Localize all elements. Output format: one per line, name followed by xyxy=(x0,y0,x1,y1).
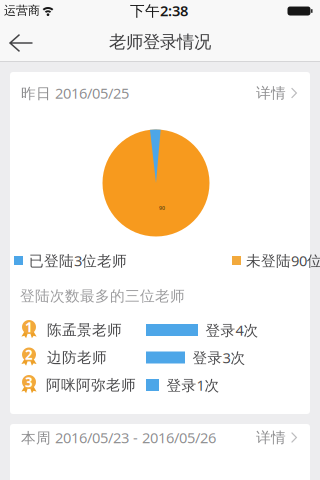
staticText: 90 xyxy=(159,204,165,212)
staticText: 登录4次 xyxy=(205,320,258,340)
staticText: 3 xyxy=(25,373,33,391)
staticText: 本周 2016/05/23 - 2016/05/26 xyxy=(21,428,216,447)
staticText: 详情 xyxy=(256,84,286,102)
staticText: 昨日 2016/05/25 xyxy=(21,83,129,103)
button[interactable]: 详情 xyxy=(237,426,297,448)
staticText: 未登陆90位老师 xyxy=(246,251,320,270)
staticText: 已登陆3位老师 xyxy=(29,251,127,270)
staticText: 下午2:38 xyxy=(130,1,188,20)
staticText: 老师登录情况 xyxy=(109,31,211,53)
staticText: 详情 xyxy=(256,428,286,446)
button[interactable]: 详情 xyxy=(237,82,297,104)
staticText: 登陆次数最多的三位老师 xyxy=(20,287,185,305)
staticText: 登录3次 xyxy=(192,348,245,367)
staticText: 1 xyxy=(25,318,33,336)
staticText: 2 xyxy=(25,346,33,363)
staticText: 运营商 xyxy=(4,3,40,18)
staticText: 阿咪阿弥老师 xyxy=(46,376,136,394)
staticText: 登录1次 xyxy=(166,375,219,395)
staticText: 陈孟景老师 xyxy=(47,321,122,339)
staticText: 边防老师 xyxy=(47,348,107,366)
button[interactable]: 返回 xyxy=(3,25,39,61)
